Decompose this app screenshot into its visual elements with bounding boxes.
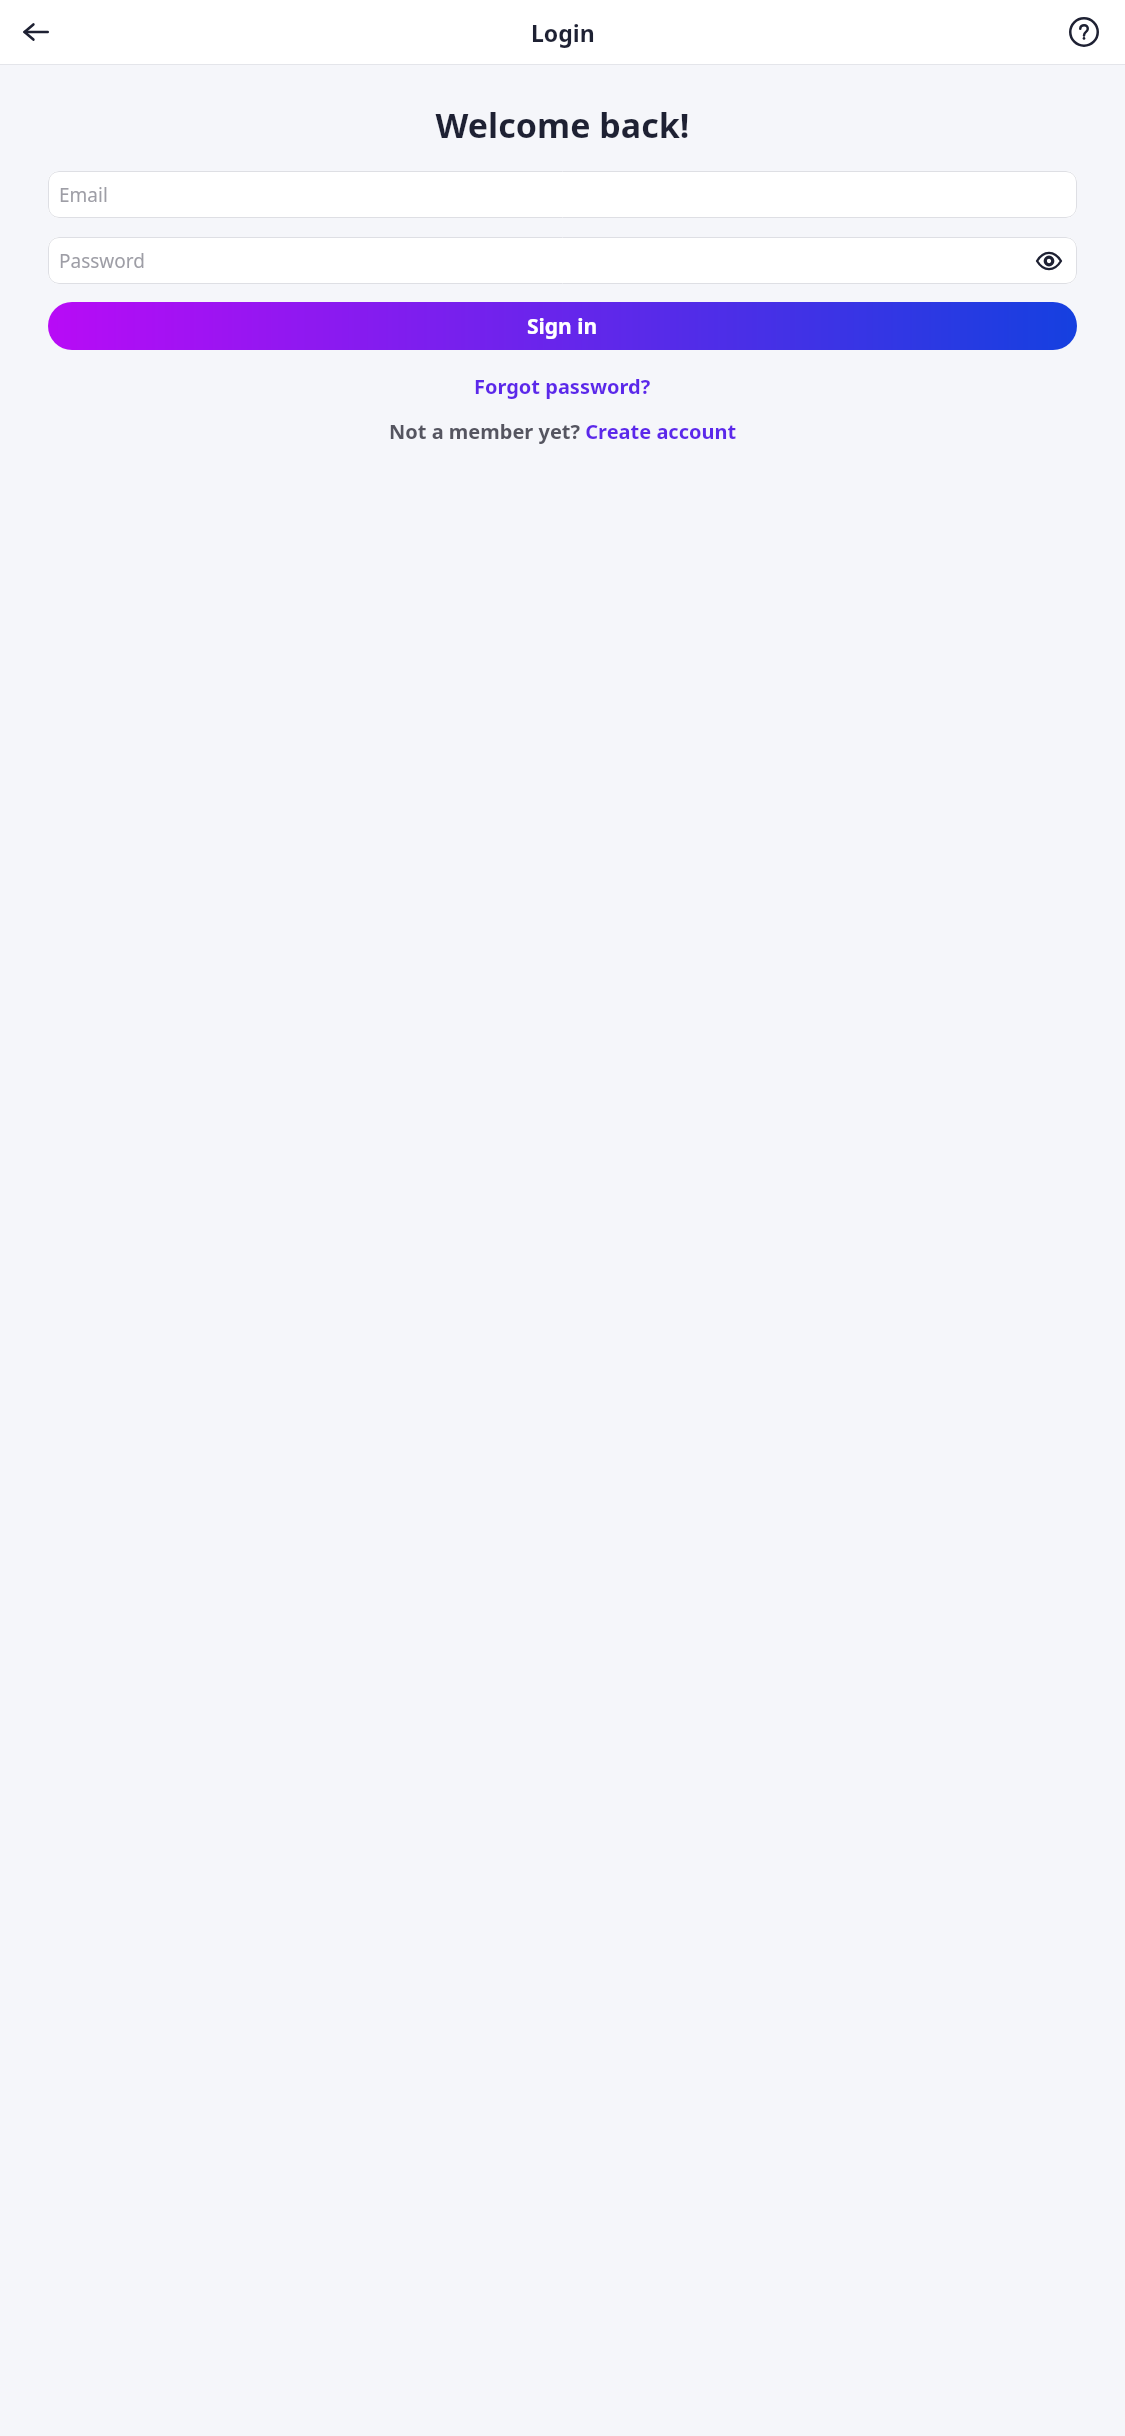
button[interactable]: Help — [1057, 5, 1111, 59]
button[interactable]: Email — [48, 171, 1077, 218]
staticText: Password — [59, 248, 145, 274]
button[interactable]: Forgot password? — [466, 369, 659, 404]
button[interactable]: Sign in — [48, 302, 1077, 350]
staticText: Sign in — [527, 312, 598, 341]
staticText: Email — [59, 182, 108, 208]
button[interactable]: Not a member yet? Create account — [381, 414, 745, 449]
button[interactable]: Show password — [1031, 243, 1067, 279]
staticText: Welcome back! — [0, 102, 1125, 148]
staticText: Not a member yet? Create account — [389, 418, 737, 445]
button[interactable]: Back — [9, 5, 63, 59]
staticText: Login — [531, 17, 595, 48]
staticText: Forgot password? — [474, 373, 651, 400]
button[interactable]: Password — [48, 237, 1077, 284]
